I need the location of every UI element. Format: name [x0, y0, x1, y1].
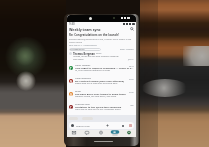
- staticText: 07:05: [129, 91, 134, 93]
- staticText: Travel Updates: [75, 64, 91, 67]
- staticText: Grant: [75, 90, 81, 93]
- staticText: Markets rallied, the new policy, and mor…: [75, 95, 117, 98]
- button[interactable]: Profile: [122, 130, 136, 137]
- button[interactable]: Spaces: [94, 130, 108, 137]
- button[interactable]: Search mail: [69, 122, 134, 129]
- staticText: Sent Tue 9:14 · 4 attachments: [69, 44, 97, 47]
- button[interactable]: Meet: [108, 130, 122, 137]
- staticText: Hi, your booking reference is ready: [75, 69, 111, 72]
- staticText: 9:30: [69, 22, 75, 26]
- button[interactable]: Nora Fitzgerald: [67, 76, 136, 89]
- staticText: 08:14: [129, 65, 134, 67]
- staticText: wrote: [96, 52, 102, 55]
- button[interactable]: Travel Updates: [67, 63, 136, 76]
- staticText: Re: Contract review (final copy attached…: [75, 79, 125, 82]
- staticText: Your flight to Lisbon is confirmed — che…: [75, 66, 134, 69]
- staticText: Yest: [130, 104, 134, 106]
- staticText: T: [70, 67, 72, 70]
- staticText: Reply · Forward: [120, 48, 134, 51]
- button[interactable]: Chat: [80, 130, 94, 137]
- button[interactable]: Mail: [67, 130, 80, 137]
- staticText: The Daily Brief: Four things to know tod…: [75, 92, 126, 95]
- staticText: N: [70, 80, 72, 83]
- staticText: Jun 14: [128, 58, 134, 61]
- staticText: Q3-roadmap.pdf: [70, 48, 85, 51]
- staticText: Re: Congratulations on the launch!: [69, 33, 119, 37]
- staticText: Thomas Bergman: [73, 52, 95, 55]
- staticText: Nora Fitzgerald: [75, 77, 91, 80]
- staticText: Charlotte Reid: [75, 103, 90, 106]
- staticText: Please give this a read over and send ba…: [75, 82, 118, 85]
- staticText: 07:52: [129, 78, 134, 80]
- staticText: Invitation to the Q3 partner showcase: [75, 105, 122, 108]
- button[interactable]: Charlotte Reid: [67, 102, 136, 115]
- button[interactable]: Thomas Bergman: [67, 51, 136, 63]
- button[interactable]: Grant: [67, 89, 136, 102]
- staticText: Search mail: [76, 124, 90, 127]
- button[interactable]: Search: [130, 27, 134, 31]
- staticText: Agreed, let me pull the final numbers to…: [73, 55, 119, 58]
- button[interactable]: Q3-roadmap.pdf: [69, 48, 101, 51]
- staticText: jennifer.lawson@northstar.io to me, Thom…: [69, 38, 134, 44]
- staticText: later today.: [73, 58, 85, 61]
- staticText: We'd love to have you at our November ev…: [75, 108, 121, 111]
- staticText: Weekly team sync: [69, 27, 101, 32]
- button[interactable]: Re: Congratulations on the launch!: [67, 32, 136, 51]
- staticText: G: [70, 93, 72, 96]
- staticText: C: [70, 106, 72, 109]
